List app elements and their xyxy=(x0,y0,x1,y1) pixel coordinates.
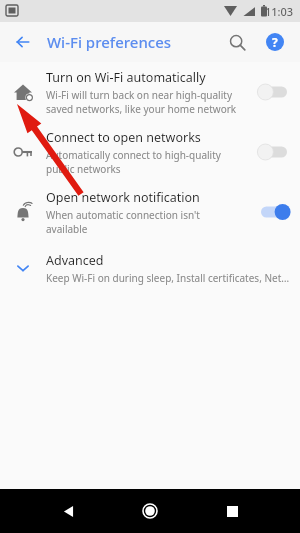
staticText: available xyxy=(46,222,88,236)
button[interactable]: Search xyxy=(222,27,252,57)
staticText: Advanced xyxy=(46,252,104,269)
staticText: Connect to open networks xyxy=(46,129,201,146)
staticText: saved networks, like your home network xyxy=(46,102,237,116)
button[interactable]: Back xyxy=(52,495,84,527)
button[interactable]: Advanced xyxy=(0,242,300,294)
staticText: 11:03 xyxy=(265,4,294,19)
staticText: Open network notification xyxy=(46,189,200,206)
button[interactable]: Turn on Wi-Fi automatically xyxy=(0,62,300,122)
button[interactable]: Off xyxy=(248,132,300,172)
button[interactable]: Open network notification xyxy=(0,182,300,242)
button[interactable]: Connect to open networks xyxy=(0,122,300,182)
staticText: Keep Wi-Fi on during sleep, Install cert… xyxy=(46,271,290,285)
button[interactable]: Off xyxy=(248,72,300,112)
staticText: Turn on Wi-Fi automatically xyxy=(46,69,206,86)
staticText: Wi-Fi will turn back on near high-qualit… xyxy=(46,88,232,102)
button[interactable]: Help xyxy=(260,27,290,57)
button[interactable]: Back xyxy=(8,27,38,57)
staticText: public networks xyxy=(46,162,121,176)
button[interactable]: Home xyxy=(133,494,167,528)
staticText: ? xyxy=(272,34,278,50)
button[interactable]: On xyxy=(248,192,300,232)
button[interactable]: Recents xyxy=(216,495,248,527)
staticText: Wi-Fi preferences xyxy=(47,32,172,52)
staticText: Automatically connect to high-quality xyxy=(46,148,221,162)
staticText: When automatic connection isn't xyxy=(46,208,200,222)
